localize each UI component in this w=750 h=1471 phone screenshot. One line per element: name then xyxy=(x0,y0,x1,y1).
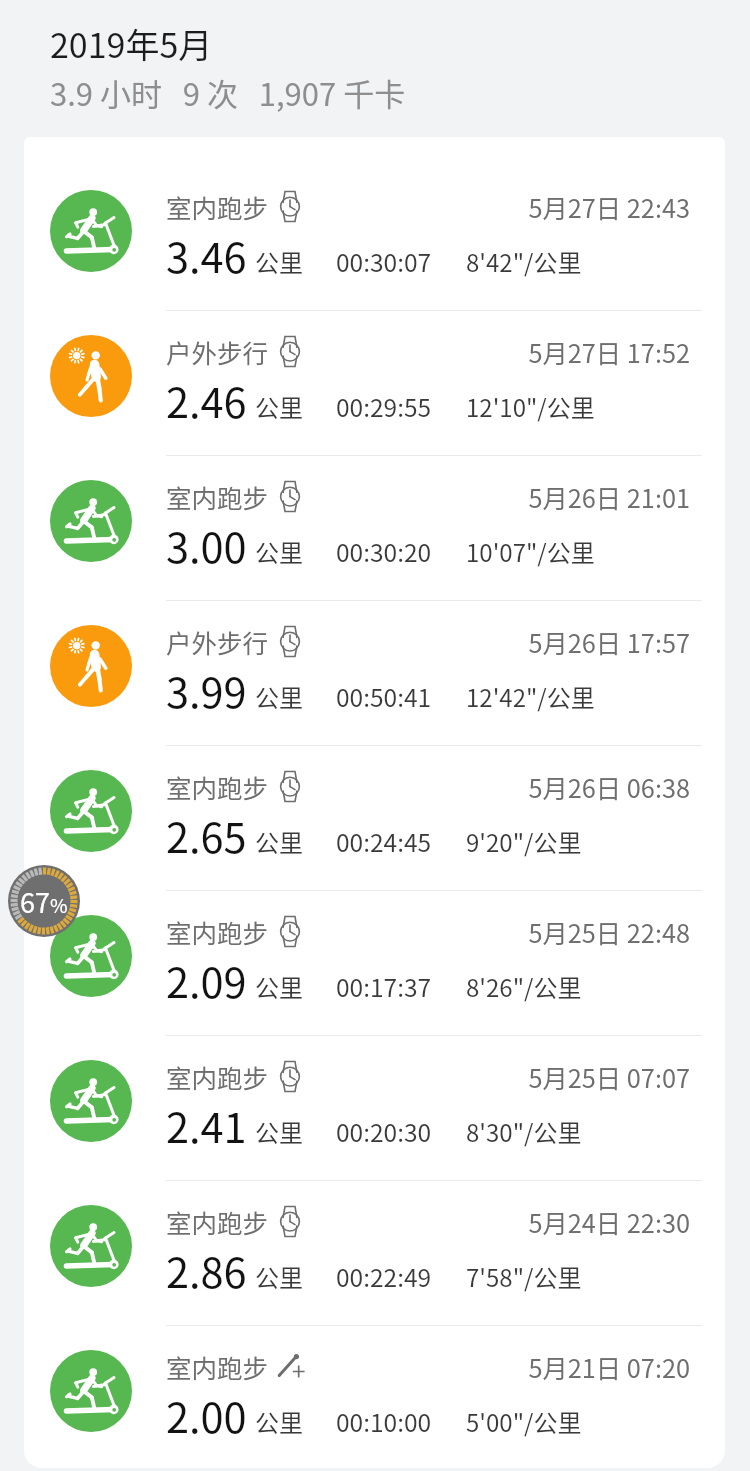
staticText: 00:10:00 xyxy=(336,1404,432,1439)
staticText: 5月26日 17:57 xyxy=(528,624,690,661)
staticText: 00:22:49 xyxy=(336,1259,432,1294)
staticText: 户外步行 xyxy=(166,333,269,370)
staticText: 5月25日 07:07 xyxy=(528,1059,690,1096)
staticText: 5月27日 22:43 xyxy=(528,189,690,226)
button[interactable]: 室内跑步 xyxy=(24,165,725,310)
staticText: 室内跑步 xyxy=(166,188,269,225)
other: Recorded by watch xyxy=(278,480,302,513)
staticText: 5月26日 21:01 xyxy=(528,479,690,516)
staticText: 00:17:37 xyxy=(336,969,432,1004)
staticText: 00:30:07 xyxy=(336,244,432,279)
staticText: 公里 xyxy=(255,1404,303,1439)
staticText: 室内跑步 xyxy=(166,1203,269,1240)
staticText: 公里 xyxy=(255,1114,303,1149)
staticText: 室内跑步 xyxy=(166,478,269,515)
button[interactable]: 室内跑步 xyxy=(24,1180,725,1325)
staticText: 10'07"/公里 xyxy=(466,534,595,569)
staticText: 5月27日 17:52 xyxy=(528,334,690,371)
staticText: 5月21日 07:20 xyxy=(528,1349,690,1386)
staticText: 00:29:55 xyxy=(336,389,432,424)
staticText: 公里 xyxy=(255,534,303,569)
button[interactable]: 户外步行 xyxy=(24,600,725,745)
staticText: 室内跑步 xyxy=(166,1058,269,1095)
staticText: 00:24:45 xyxy=(336,824,432,859)
other: Recorded by watch xyxy=(278,915,302,948)
staticText: 2.65 xyxy=(166,805,247,865)
staticText: 室内跑步 xyxy=(166,1348,269,1385)
staticText: 3.99 xyxy=(166,660,247,720)
staticText: 3.46 xyxy=(166,225,247,285)
staticText: 公里 xyxy=(255,679,303,714)
staticText: 67 xyxy=(20,882,50,921)
other: Recorded by watch xyxy=(278,1205,302,1238)
staticText: 8'30"/公里 xyxy=(466,1114,582,1149)
other: Recorded by watch xyxy=(278,625,302,658)
staticText: 8'26"/公里 xyxy=(466,969,582,1004)
staticText: % xyxy=(50,891,68,919)
staticText: 00:20:30 xyxy=(336,1114,432,1149)
staticText: 00:30:20 xyxy=(336,534,432,569)
staticText: 5月24日 22:30 xyxy=(528,1204,690,1241)
staticText: 12'10"/公里 xyxy=(466,389,595,424)
staticText: 3.9 小时 9 次 1,907 千卡 xyxy=(50,70,406,115)
other: Recorded by watch xyxy=(278,1060,302,1093)
button[interactable]: 户外步行 xyxy=(24,310,725,455)
staticText: 公里 xyxy=(255,969,303,1004)
button[interactable]: 室内跑步 xyxy=(24,890,725,1035)
button[interactable]: 室内跑步 xyxy=(24,1325,725,1468)
staticText: 室内跑步 xyxy=(166,913,269,950)
button[interactable]: 室内跑步 xyxy=(24,455,725,600)
staticText: 2.86 xyxy=(166,1240,247,1300)
other: Recorded by watch xyxy=(278,335,302,368)
button[interactable]: 室内跑步 xyxy=(24,745,725,890)
other: Recorded by watch xyxy=(278,190,302,223)
staticText: 2019年5月 xyxy=(50,19,213,68)
staticText: 3.00 xyxy=(166,515,247,575)
staticText: 5月26日 06:38 xyxy=(528,769,690,806)
button[interactable]: 室内跑步 xyxy=(24,1035,725,1180)
staticText: 2.00 xyxy=(166,1385,247,1445)
staticText: 公里 xyxy=(255,824,303,859)
staticText: 2.46 xyxy=(166,370,247,430)
staticText: 12'42"/公里 xyxy=(466,679,595,714)
staticText: 2.09 xyxy=(166,950,247,1010)
other: Recorded by watch xyxy=(278,770,302,803)
staticText: 公里 xyxy=(255,1259,303,1294)
staticText: 5'00"/公里 xyxy=(466,1404,582,1439)
staticText: 00:50:41 xyxy=(336,679,432,714)
other: Manually added xyxy=(278,1354,306,1379)
staticText: 2.41 xyxy=(166,1095,247,1155)
staticText: 9'20"/公里 xyxy=(466,824,582,859)
staticText: 公里 xyxy=(255,244,303,279)
staticText: 8'42"/公里 xyxy=(466,244,582,279)
staticText: 户外步行 xyxy=(166,623,269,660)
staticText: 5月25日 22:48 xyxy=(528,914,690,951)
staticText: 室内跑步 xyxy=(166,768,269,805)
other: Watch battery 67 percent xyxy=(8,865,80,937)
staticText: 7'58"/公里 xyxy=(466,1259,582,1294)
staticText: 公里 xyxy=(255,389,303,424)
